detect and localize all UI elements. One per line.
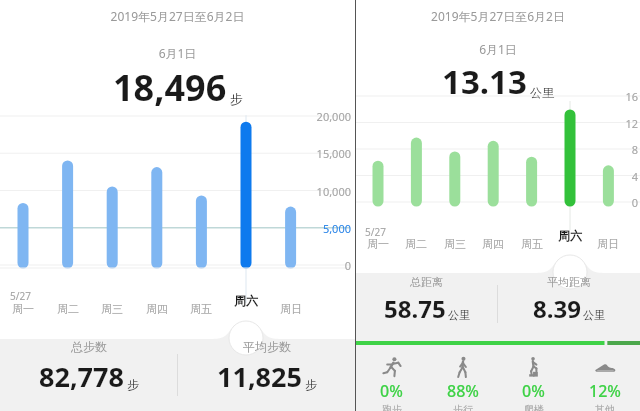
staticText: 周日 <box>589 237 627 251</box>
staticText: 5/27 <box>365 225 386 239</box>
button[interactable]: 总步数 <box>0 339 177 395</box>
staticText: 58.75 <box>384 292 446 325</box>
staticText: 周三 <box>436 237 474 251</box>
staticText: 周三 <box>92 302 132 316</box>
staticText: 周日 <box>271 302 311 316</box>
staticText: 13.13 <box>442 59 527 104</box>
staticText: 周二 <box>397 237 435 251</box>
staticText: 5/27 <box>10 289 31 303</box>
staticText: 总步数 <box>71 339 107 354</box>
button[interactable]: 平均距离 <box>498 275 640 325</box>
staticText: 周一 <box>359 237 397 251</box>
button[interactable]: 总距离 <box>356 275 497 325</box>
staticText: 2019年5月27日至6月2日 <box>0 8 355 24</box>
staticText: 20,000 <box>307 109 351 124</box>
staticText: 4 <box>612 169 638 184</box>
staticText: 总距离 <box>410 275 443 289</box>
staticText: 公里 <box>448 308 470 322</box>
staticText: 6月1日 <box>0 45 355 61</box>
staticText: 16 <box>612 89 638 104</box>
button[interactable]: 步行 <box>427 355 498 411</box>
staticText: 11,825 <box>217 358 302 395</box>
button[interactable]: 爬楼 <box>498 355 569 411</box>
staticText: 平均步数 <box>243 339 291 354</box>
staticText: 周五 <box>513 237 551 251</box>
staticText: 88% <box>447 380 479 402</box>
staticText: 步 <box>305 377 317 392</box>
staticText: 0% <box>522 380 545 402</box>
staticText: 0% <box>380 380 403 402</box>
staticText: 周六 <box>226 293 266 308</box>
staticText: 周一 <box>3 302 43 316</box>
staticText: 5,000 <box>307 221 351 236</box>
staticText: 10,000 <box>307 184 351 199</box>
staticText: 平均距离 <box>547 275 591 289</box>
staticText: 6月1日 <box>356 41 640 57</box>
staticText: 跑步 <box>382 403 402 411</box>
staticText: 82,778 <box>39 358 124 395</box>
staticText: 步 <box>230 91 243 107</box>
staticText: 周四 <box>137 302 177 316</box>
staticText: 步 <box>127 377 139 392</box>
staticText: 12% <box>589 380 621 402</box>
staticText: 15,000 <box>307 146 351 161</box>
staticText: 8.39 <box>533 292 581 325</box>
staticText: 0 <box>612 195 638 210</box>
staticText: 周四 <box>474 237 512 251</box>
staticText: 0 <box>307 258 351 273</box>
staticText: 周二 <box>48 302 88 316</box>
staticText: 18,496 <box>113 63 227 112</box>
button[interactable]: 跑步 <box>356 355 427 411</box>
staticText: 爬楼 <box>524 403 544 411</box>
staticText: 12 <box>612 116 638 131</box>
staticText: 2019年5月27日至6月2日 <box>356 8 640 24</box>
staticText: 8 <box>612 142 638 157</box>
staticText: 周六 <box>551 228 589 243</box>
button[interactable]: 平均步数 <box>178 339 355 395</box>
staticText: 其他 <box>595 403 615 411</box>
staticText: 公里 <box>583 308 605 322</box>
staticText: 公里 <box>530 85 554 100</box>
staticText: 步行 <box>453 403 473 411</box>
staticText: 周五 <box>181 302 221 316</box>
button[interactable]: 其他 <box>569 355 640 411</box>
